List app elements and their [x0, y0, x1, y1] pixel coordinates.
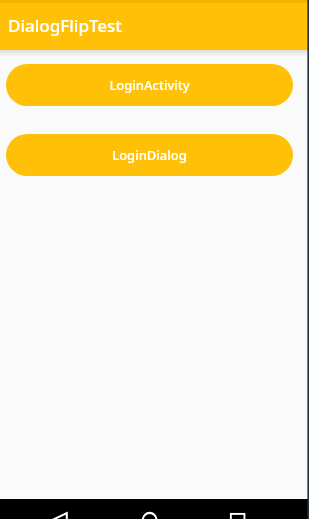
- staticText: LoginActivity: [109, 76, 190, 94]
- button[interactable]: LoginDialog: [6, 134, 293, 176]
- staticText: LoginDialog: [112, 146, 187, 164]
- button[interactable]: Back: [26, 499, 98, 519]
- staticText: DialogFlipTest: [8, 14, 122, 37]
- button[interactable]: Recent apps: [202, 499, 274, 519]
- button[interactable]: Home: [114, 499, 186, 519]
- button[interactable]: LoginActivity: [6, 64, 293, 106]
